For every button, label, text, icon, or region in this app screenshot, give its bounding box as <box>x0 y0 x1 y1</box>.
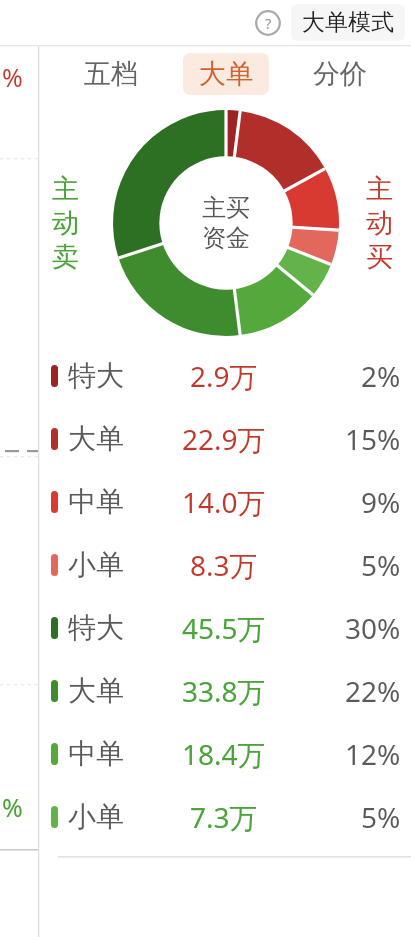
staticText: 7.3万 <box>190 798 258 836</box>
staticText: 大单 <box>68 421 124 456</box>
button[interactable]: 分价 <box>297 53 383 95</box>
staticText: 小单 <box>68 547 124 582</box>
staticText: 33.8万 <box>182 672 266 710</box>
button[interactable]: 中单 <box>40 470 411 533</box>
staticText: 2.9万 <box>190 357 258 395</box>
button[interactable]: 中单 <box>40 722 411 785</box>
staticText: 5% <box>361 546 401 584</box>
button[interactable]: 大单 <box>40 407 411 470</box>
staticText: 分价 <box>313 57 367 91</box>
staticText: 14.0万 <box>182 483 266 521</box>
staticText: 买 <box>366 240 393 274</box>
staticText: 中单 <box>68 736 124 771</box>
staticText: 18.4万 <box>182 735 266 773</box>
staticText: 45.5万 <box>182 609 266 647</box>
staticText: 五档 <box>84 57 138 91</box>
staticText: 特大 <box>68 610 124 645</box>
button[interactable]: 大单模式 <box>291 4 405 41</box>
staticText: 主买 <box>202 193 250 223</box>
button[interactable]: Help <box>253 8 283 38</box>
button[interactable]: 特大 <box>40 596 411 659</box>
staticText: 动 <box>52 206 79 240</box>
staticText: 2% <box>361 357 401 395</box>
button[interactable]: 小单 <box>40 533 411 596</box>
staticText: 主 <box>52 172 79 206</box>
staticText: 22.9万 <box>182 420 266 458</box>
staticText: 动 <box>366 206 393 240</box>
button[interactable]: 五档 <box>68 53 154 95</box>
staticText: 22% <box>345 672 401 710</box>
staticText: 卖 <box>52 240 79 274</box>
staticText: 中单 <box>68 484 124 519</box>
staticText: 资金 <box>202 223 250 253</box>
staticText: 12% <box>345 735 401 773</box>
button[interactable]: 小单 <box>40 785 411 848</box>
button[interactable]: 大单 <box>40 659 411 722</box>
staticText: 15% <box>345 420 401 458</box>
staticText: 特大 <box>68 358 124 393</box>
staticText: 5% <box>361 798 401 836</box>
staticText: 大单模式 <box>302 8 394 37</box>
staticText: 30% <box>345 609 401 647</box>
staticText: 主 <box>366 172 393 206</box>
staticText: % <box>2 60 23 94</box>
staticText: 大单 <box>199 57 253 91</box>
staticText: 小单 <box>68 799 124 834</box>
button[interactable]: 特大 <box>40 344 411 407</box>
staticText: ? <box>265 13 272 33</box>
button[interactable]: 大单 <box>183 53 269 95</box>
staticText: 大单 <box>68 673 124 708</box>
staticText: 9% <box>361 483 401 521</box>
staticText: 8.3万 <box>190 546 258 584</box>
staticText: % <box>2 790 23 824</box>
button[interactable]: 资金分布图 <box>113 110 339 336</box>
